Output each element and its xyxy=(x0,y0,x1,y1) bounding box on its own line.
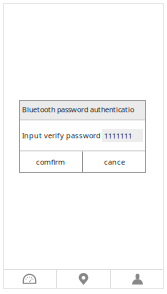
staticText: Bluetooth password authenticatio xyxy=(22,105,134,114)
button[interactable]: Location xyxy=(57,269,110,289)
button[interactable]: 1111111 xyxy=(102,129,143,142)
staticText: comfirm xyxy=(36,157,65,167)
button[interactable]: Profile xyxy=(111,269,164,289)
staticText: cance xyxy=(104,157,125,167)
button[interactable]: Dashboard xyxy=(3,269,56,289)
button[interactable]: cance xyxy=(83,151,146,172)
staticText: 1111111 xyxy=(104,130,132,141)
button[interactable]: comfirm xyxy=(19,151,82,172)
staticText: Input verify password xyxy=(22,130,101,140)
